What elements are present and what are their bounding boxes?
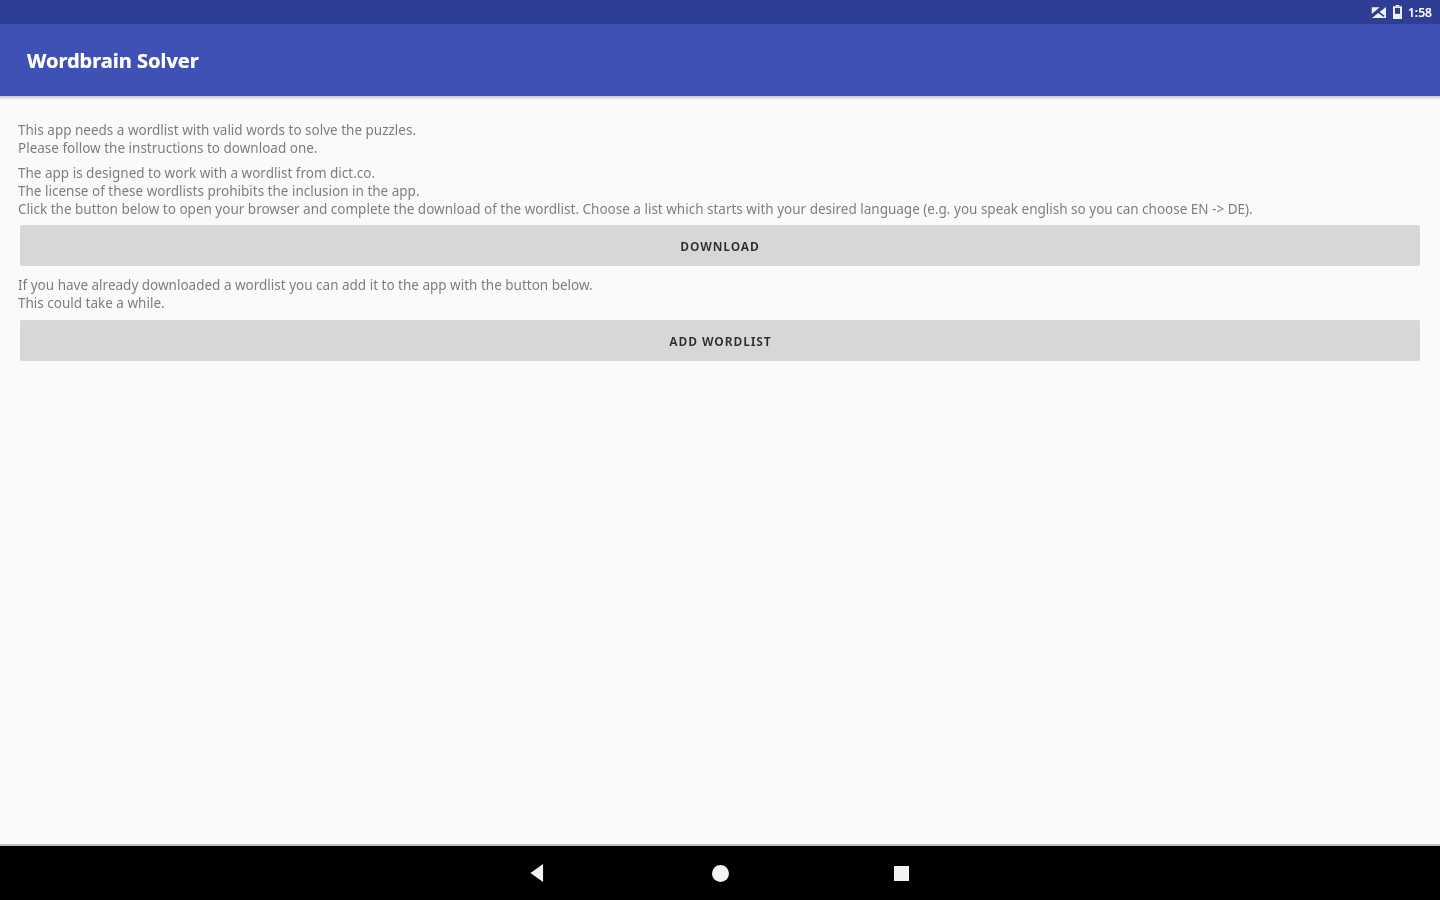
staticText: This app needs a wordlist with valid wor… — [18, 121, 1422, 139]
staticText: The license of these wordlists prohibits… — [18, 182, 1422, 200]
staticText: The app is designed to work with a wordl… — [18, 164, 1422, 182]
button[interactable]: ADD WORDLIST — [20, 320, 1420, 361]
staticText: Wordbrain Solver — [27, 47, 199, 74]
staticText: Click the button below to open your brow… — [18, 200, 1422, 218]
button[interactable]: Back — [508, 846, 568, 900]
staticText: If you have already downloaded a wordlis… — [18, 276, 1422, 294]
button[interactable]: Home — [690, 846, 750, 900]
staticText: 1:58 — [1408, 4, 1432, 20]
staticText: DOWNLOAD — [680, 238, 760, 254]
staticText: Please follow the instructions to downlo… — [18, 139, 1422, 157]
staticText: ADD WORDLIST — [669, 333, 772, 349]
button[interactable]: DOWNLOAD — [20, 225, 1420, 266]
button[interactable]: Recent apps — [871, 846, 931, 900]
staticText: This could take a while. — [18, 294, 1422, 312]
